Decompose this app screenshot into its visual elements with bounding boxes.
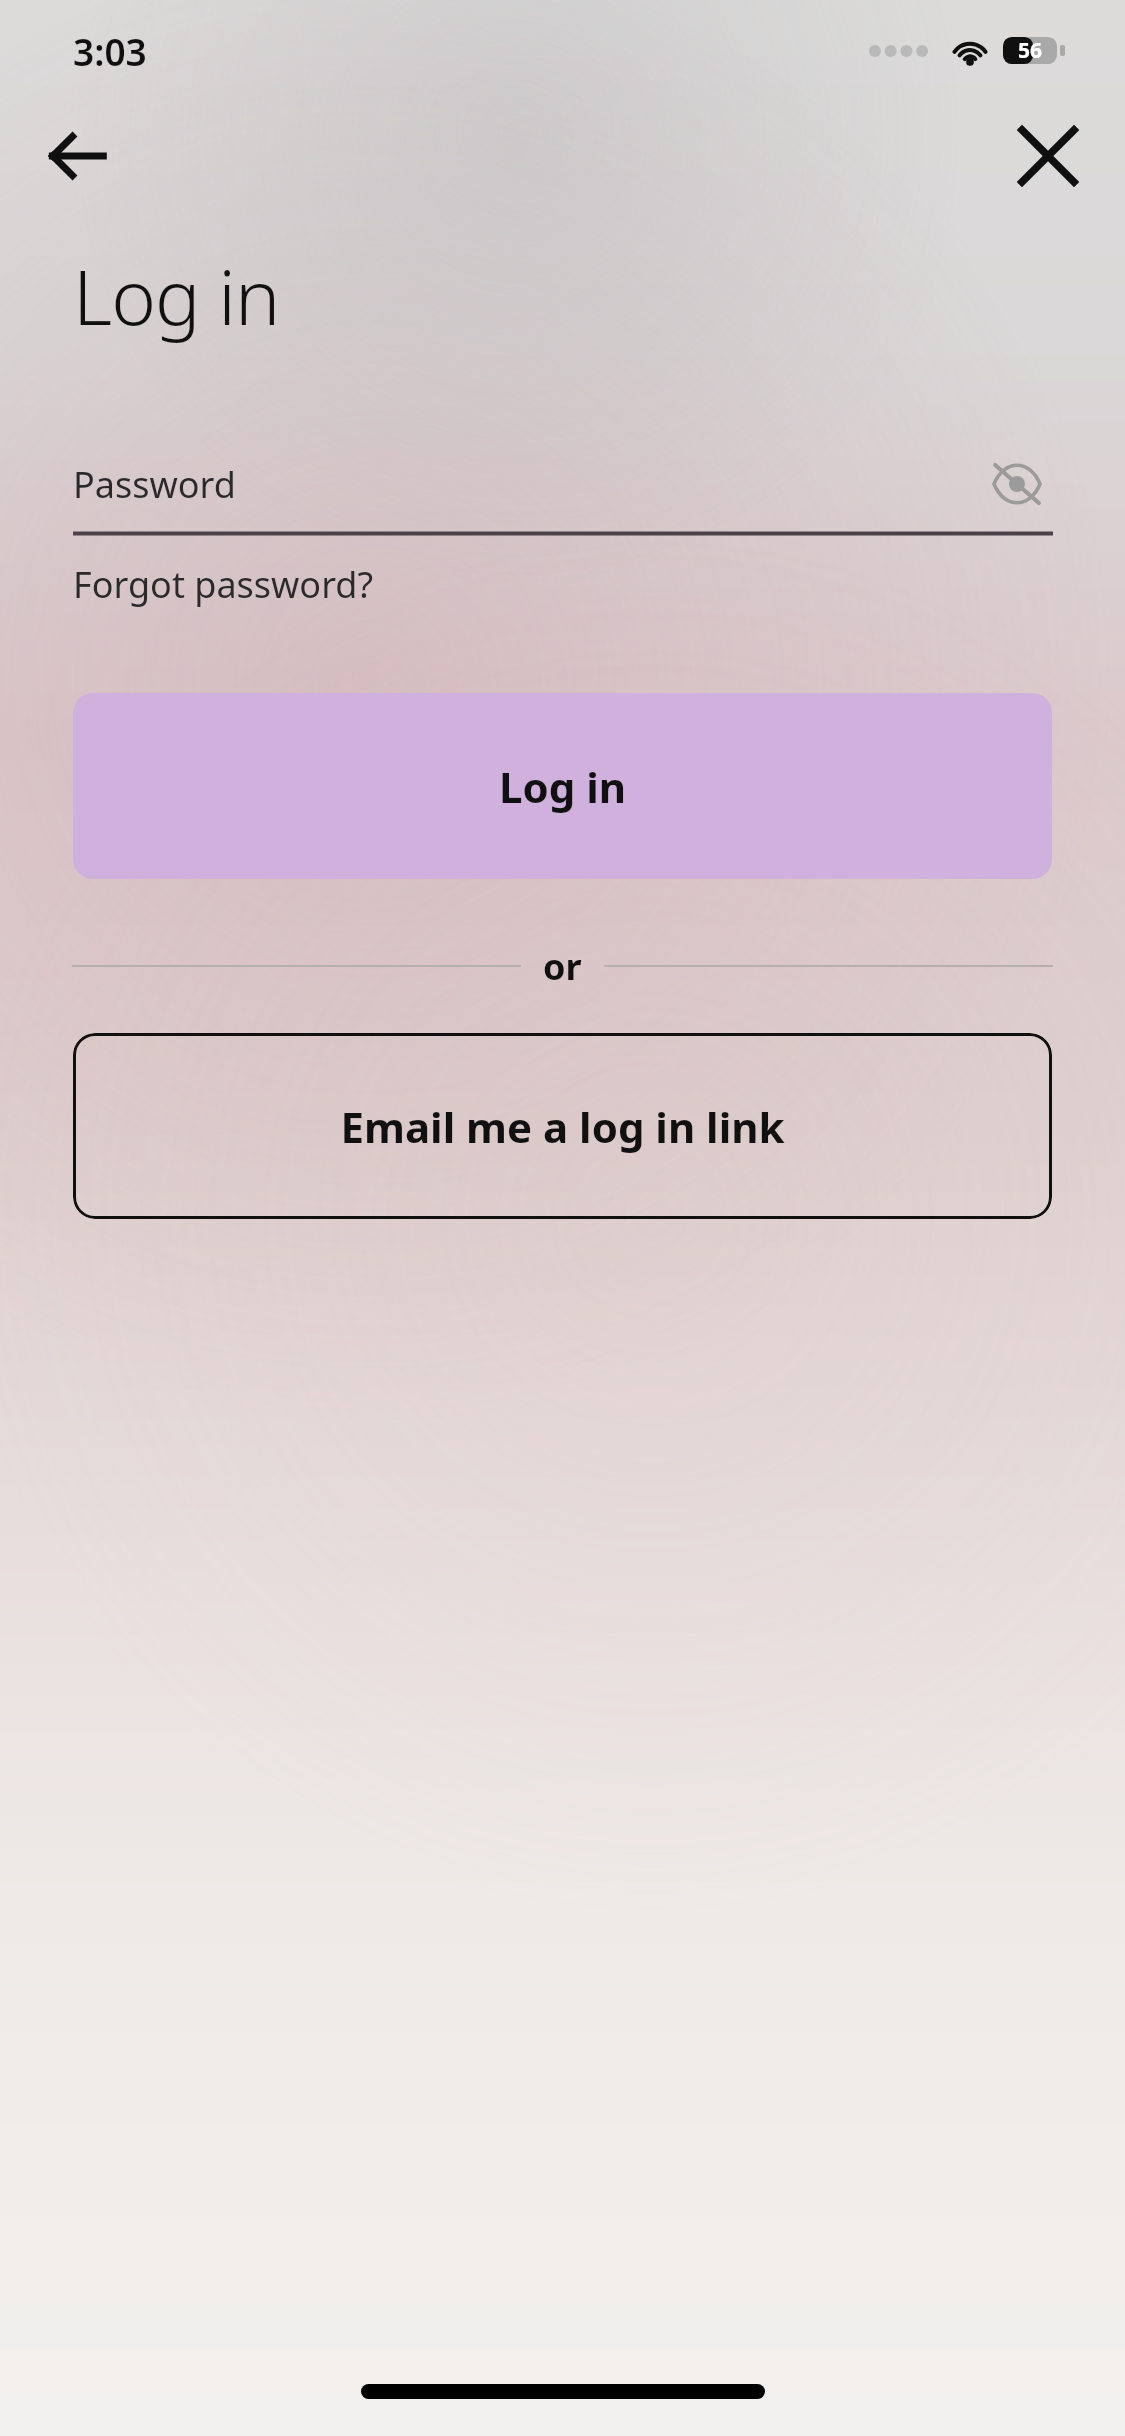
- staticText: Password: [73, 460, 236, 509]
- staticText: 3:03: [73, 26, 147, 76]
- button[interactable]: Show password: [981, 448, 1053, 520]
- staticText: or: [543, 942, 582, 991]
- button[interactable]: Back: [34, 113, 120, 199]
- staticText: Log in: [499, 758, 627, 815]
- button[interactable]: Forgot password?: [73, 560, 374, 609]
- button[interactable]: Log in: [73, 693, 1052, 879]
- staticText: Log in: [73, 244, 280, 348]
- button[interactable]: Close: [1005, 113, 1091, 199]
- button[interactable]: Password: [73, 440, 1053, 536]
- button[interactable]: Email me a log in link: [73, 1033, 1052, 1219]
- staticText: 56: [1018, 36, 1043, 65]
- staticText: Forgot password?: [73, 560, 374, 609]
- staticText: Email me a log in link: [340, 1098, 785, 1155]
